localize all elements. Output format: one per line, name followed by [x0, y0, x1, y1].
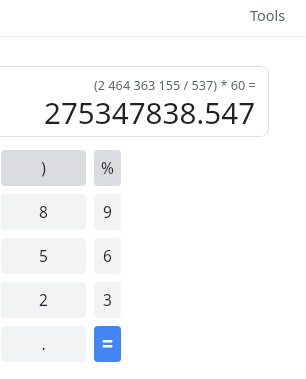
- button[interactable]: 2: [1, 282, 86, 318]
- staticText: 5: [39, 245, 48, 266]
- staticText: 275347838.547: [44, 92, 256, 132]
- button[interactable]: Percent: [94, 150, 121, 186]
- staticText: %: [101, 157, 114, 178]
- button[interactable]: Decimal point: [1, 326, 86, 362]
- staticText: (2 464 363 155 / 537) * 60 =: [94, 76, 256, 93]
- button[interactable]: (2 464 363 155 / 537) * 60 =: [0, 66, 269, 137]
- staticText: 8: [39, 201, 48, 222]
- staticText: 3: [103, 289, 112, 310]
- button[interactable]: 6: [94, 238, 121, 274]
- button[interactable]: ): [1, 150, 86, 186]
- button[interactable]: Tools: [250, 5, 286, 25]
- button[interactable]: 9: [94, 194, 121, 230]
- staticText: 6: [103, 245, 112, 266]
- staticText: Tools: [250, 5, 286, 25]
- staticText: 9: [103, 201, 112, 222]
- staticText: 2: [39, 289, 48, 310]
- staticText: ): [41, 157, 46, 178]
- button[interactable]: 8: [1, 194, 86, 230]
- button[interactable]: 3: [94, 282, 121, 318]
- staticText: .: [41, 333, 46, 354]
- button[interactable]: Equals: [94, 326, 121, 362]
- button[interactable]: 5: [1, 238, 86, 274]
